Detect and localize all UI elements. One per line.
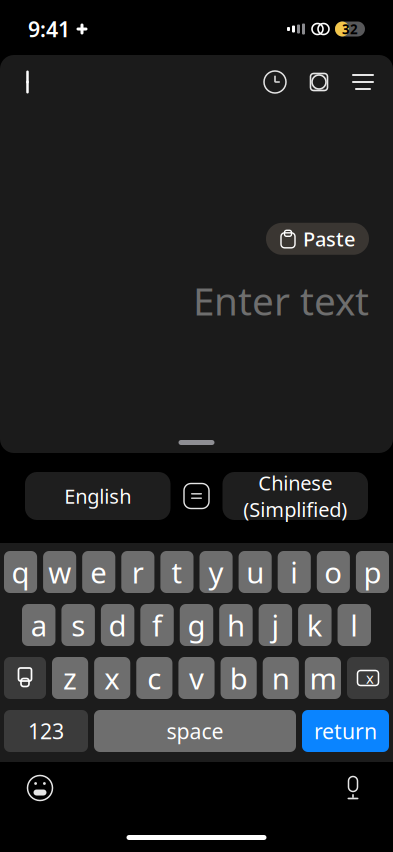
button[interactable]: y	[199, 551, 233, 593]
button[interactable]: Dictation	[331, 766, 375, 810]
button[interactable]: space	[94, 710, 296, 752]
button[interactable]: x	[94, 657, 130, 699]
staticText: w	[48, 552, 71, 591]
staticText: b	[230, 658, 248, 697]
button[interactable]: g	[180, 604, 213, 646]
staticText: 123	[28, 717, 64, 745]
button[interactable]: return	[302, 710, 389, 752]
button[interactable]: s	[61, 604, 95, 646]
button[interactable]: b	[221, 657, 257, 699]
button[interactable]: Back	[8, 60, 52, 104]
button[interactable]: Chinese	[222, 472, 368, 520]
staticText: space	[166, 717, 223, 745]
staticText: s	[71, 605, 85, 644]
staticText: o	[324, 552, 342, 591]
button[interactable]: v	[178, 657, 214, 699]
button[interactable]: Swap languages	[170, 472, 222, 520]
staticText: h	[227, 605, 245, 644]
button[interactable]: a	[22, 604, 55, 646]
staticText: x	[104, 658, 120, 697]
staticText: x	[366, 668, 374, 688]
button[interactable]: q	[4, 551, 37, 593]
staticText: a	[31, 605, 47, 644]
staticText: y	[209, 552, 224, 591]
button[interactable]: Menu	[341, 60, 385, 104]
button[interactable]: Favorites	[297, 60, 341, 104]
button[interactable]: t	[160, 551, 193, 593]
staticText: k	[307, 605, 323, 644]
staticText: v	[189, 658, 204, 697]
button[interactable]: d	[101, 604, 134, 646]
staticText: t	[171, 552, 182, 591]
staticText: j	[271, 605, 279, 644]
staticText: l	[350, 605, 358, 644]
staticText: r	[132, 552, 144, 591]
button[interactable]: m	[305, 657, 341, 699]
staticText: p	[363, 552, 381, 591]
staticText: n	[272, 658, 290, 697]
staticText: g	[187, 605, 205, 644]
button[interactable]: e	[82, 551, 115, 593]
staticText: e	[90, 552, 107, 591]
staticText: c	[147, 658, 161, 697]
button[interactable]: r	[121, 551, 154, 593]
button[interactable]: Delete	[347, 657, 389, 699]
button[interactable]: w	[43, 551, 76, 593]
button[interactable]: Paste	[266, 223, 369, 255]
staticText: m	[309, 658, 336, 697]
staticText: (Simplified)	[243, 496, 347, 523]
button[interactable]: n	[263, 657, 299, 699]
button[interactable]: 123	[4, 710, 88, 752]
button[interactable]: Emoji keyboard	[18, 766, 62, 810]
staticText: d	[109, 605, 127, 644]
staticText: Paste	[303, 225, 355, 252]
button[interactable]: j	[259, 604, 292, 646]
staticText: English	[64, 483, 131, 509]
button[interactable]: h	[219, 604, 253, 646]
staticText: z	[63, 658, 77, 697]
button[interactable]: History	[253, 60, 297, 104]
staticText: i	[290, 552, 298, 591]
button[interactable]: z	[52, 657, 88, 699]
button[interactable]: f	[140, 604, 174, 646]
staticText: Chinese	[258, 469, 332, 496]
button[interactable]: u	[239, 551, 272, 593]
button[interactable]: English	[25, 472, 170, 520]
staticText: 32	[342, 20, 358, 38]
button[interactable]: c	[136, 657, 172, 699]
staticText: q	[12, 552, 30, 591]
staticText: u	[246, 552, 264, 591]
button[interactable]: l	[338, 604, 371, 646]
staticText: Enter text	[193, 275, 369, 326]
staticText: 9:41	[28, 15, 70, 43]
staticText: return	[314, 717, 377, 745]
staticText: f	[152, 605, 162, 644]
button[interactable]: o	[317, 551, 350, 593]
button[interactable]: Shift	[4, 657, 46, 699]
button[interactable]: p	[356, 551, 389, 593]
button[interactable]: k	[298, 604, 331, 646]
button[interactable]: i	[278, 551, 311, 593]
